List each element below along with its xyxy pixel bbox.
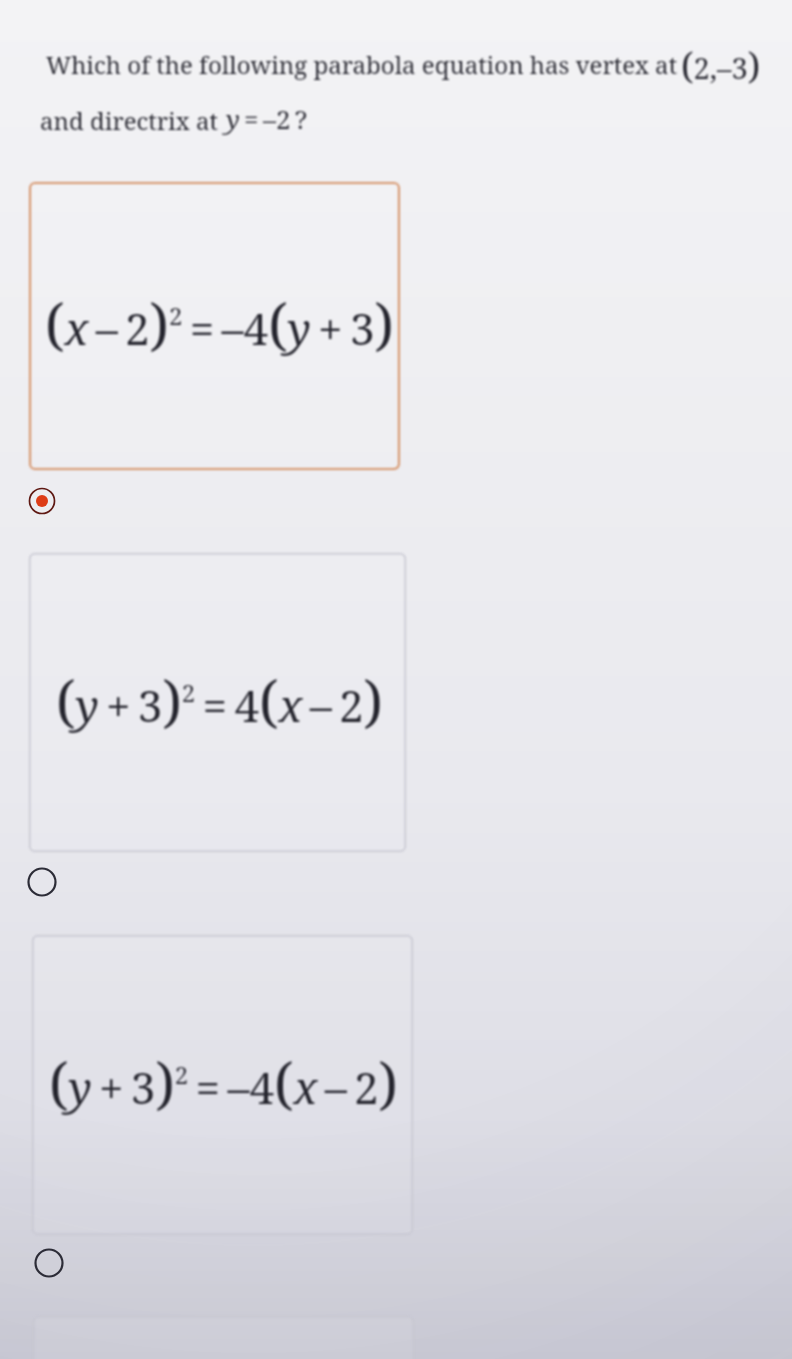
staticText: Which of the following parabola equation…	[46, 48, 678, 81]
staticText: y = –2 ?	[226, 101, 308, 136]
button[interactable]: Selected answer	[24, 483, 60, 519]
button[interactable]: Answer option 3	[32, 935, 413, 1235]
button[interactable]: Select answer	[24, 864, 60, 900]
button[interactable]: Select answer	[31, 1245, 67, 1281]
staticText: (x – 2)2 = –4(y + 3)	[45, 285, 394, 361]
staticText: (y + 3)2 = –4(x – 2)	[49, 1044, 398, 1120]
button[interactable]: Answer option 2	[29, 553, 406, 852]
button[interactable]: Answer option 1	[29, 182, 400, 470]
staticText: and directrix at	[40, 104, 218, 137]
staticText: (y + 3)2 = 4(x – 2)	[56, 662, 383, 738]
staticText: (2,–3)	[681, 41, 761, 90]
